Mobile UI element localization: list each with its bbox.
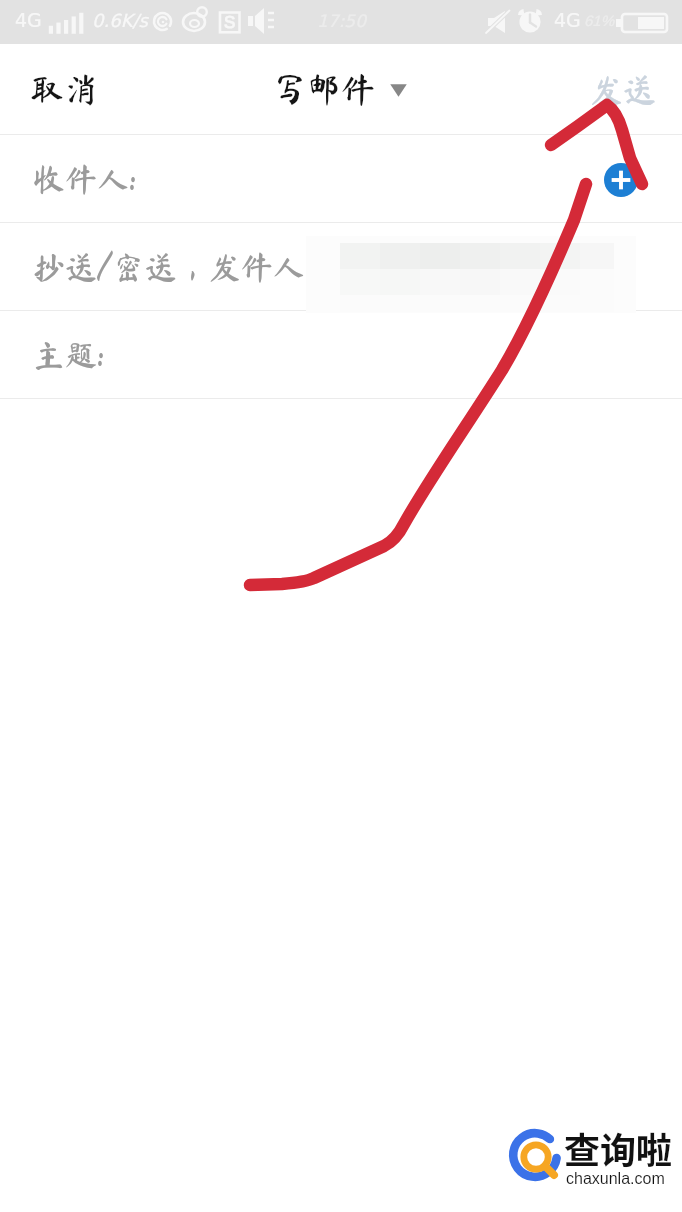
staticText: 4G — [554, 9, 581, 31]
button[interactable]: 发送 — [562, 57, 682, 122]
staticText: 写邮件 — [273, 72, 375, 106]
button[interactable]: 取消 — [0, 56, 128, 122]
staticText: 取消 — [30, 72, 98, 106]
button[interactable]: 收件人: — [0, 135, 682, 222]
staticText: 收件人: — [33, 163, 137, 195]
staticText: 4G — [15, 9, 42, 31]
staticText: 0.6K/s — [92, 10, 148, 31]
staticText: 61% — [584, 12, 615, 29]
staticText: 主题: — [33, 339, 105, 371]
button[interactable]: Add recipient — [604, 163, 638, 197]
staticText: 查询啦 — [564, 1122, 673, 1174]
button[interactable]: 主题: — [0, 311, 682, 398]
button[interactable]: 写邮件 — [267, 66, 413, 112]
staticText: chaxunla.com — [566, 1170, 665, 1188]
button[interactable]: 抄送/密送，发件人 — [0, 223, 682, 310]
staticText: S — [224, 13, 236, 32]
staticText: 抄送/密送，发件人 — [33, 251, 305, 283]
staticText: 17:50 — [317, 11, 366, 31]
staticText: 发送 — [590, 73, 656, 106]
